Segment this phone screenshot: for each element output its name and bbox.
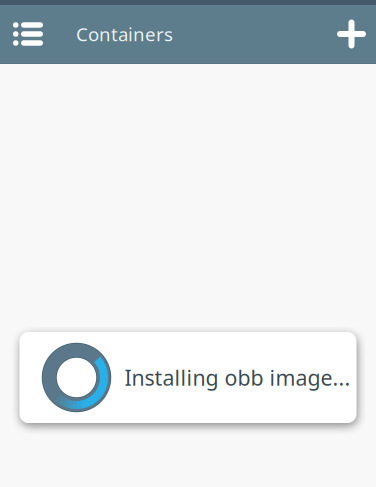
button[interactable]: Add container <box>337 5 376 63</box>
staticText: Containers <box>76 22 173 46</box>
button[interactable]: Show containers menu <box>0 5 76 63</box>
staticText: Installing obb image... <box>124 363 350 392</box>
